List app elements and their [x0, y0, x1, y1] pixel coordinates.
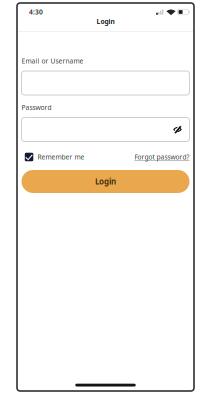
staticText: Remember me: [38, 153, 85, 161]
staticText: Login: [96, 17, 114, 26]
staticText: Password: [21, 103, 51, 112]
staticText: 4:30: [29, 8, 43, 16]
button[interactable]: Forgot password?: [134, 153, 189, 161]
staticText: Login: [95, 176, 116, 187]
button[interactable]: Remember me: [21, 153, 85, 161]
button[interactable]: Login: [21, 170, 189, 193]
staticText: Email or Username: [21, 57, 83, 65]
staticText: Forgot password?: [134, 153, 189, 161]
button[interactable]: Show password: [169, 120, 185, 138]
